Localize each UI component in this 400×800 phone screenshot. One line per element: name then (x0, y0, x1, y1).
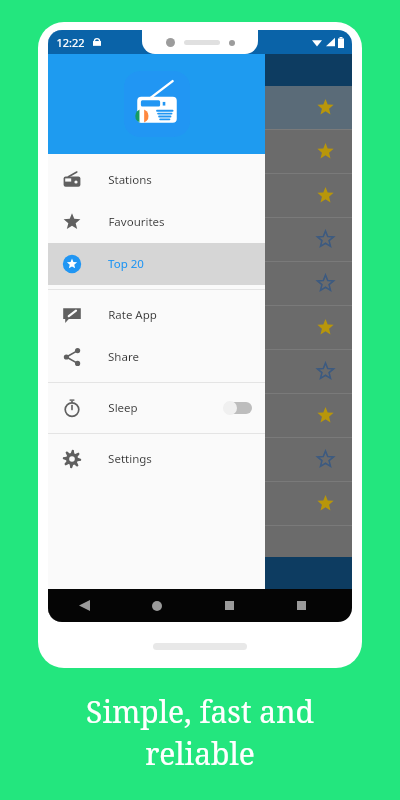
button[interactable]: Share (48, 336, 265, 378)
button[interactable]: Recents (251, 589, 352, 622)
button[interactable]: Recents (193, 589, 265, 622)
staticText: Stations (108, 172, 152, 188)
staticText: reliable (145, 733, 255, 774)
button[interactable]: Back (48, 589, 150, 622)
button[interactable] (48, 218, 352, 261)
button[interactable] (48, 130, 352, 173)
button[interactable]: Pause (48, 557, 352, 589)
button[interactable] (48, 394, 352, 437)
button[interactable] (48, 262, 352, 305)
staticText: Share (108, 349, 139, 365)
button[interactable] (48, 438, 352, 481)
staticText: Favourites (108, 214, 165, 230)
button[interactable] (48, 350, 352, 393)
button[interactable] (48, 174, 352, 217)
button[interactable]: Home (121, 589, 193, 622)
button[interactable]: Rate App (48, 294, 265, 336)
button[interactable]: Home (150, 589, 251, 622)
button[interactable]: Settings (48, 438, 265, 480)
button[interactable] (48, 306, 352, 349)
staticText: Settings (108, 451, 152, 467)
button[interactable]: Back (48, 589, 121, 622)
button[interactable] (48, 482, 352, 525)
button[interactable]: Top 20 (48, 243, 265, 285)
staticText: 12:22 (56, 35, 85, 50)
button[interactable]: Stations (48, 159, 265, 201)
button[interactable] (48, 86, 352, 129)
staticText: Top 20 (108, 256, 144, 272)
button[interactable]: Favourites (48, 201, 265, 243)
staticText: Rate App (108, 307, 157, 323)
staticText: Sleep (108, 400, 138, 416)
staticText: Simple, fast and (86, 691, 314, 732)
button[interactable]: Sleep (48, 387, 265, 429)
